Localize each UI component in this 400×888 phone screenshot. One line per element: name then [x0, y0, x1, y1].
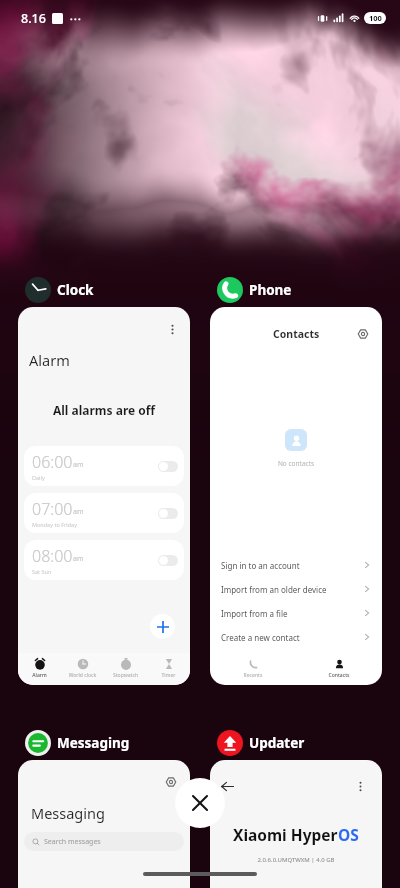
staticText: Stopwatch — [104, 672, 147, 679]
button[interactable]: More options — [18, 307, 190, 685]
staticText: am — [73, 554, 84, 564]
button[interactable]: Close all apps — [175, 778, 225, 828]
button[interactable]: Recents — [210, 655, 296, 685]
button[interactable]: Stopwatch — [104, 653, 147, 685]
button[interactable]: Messaging — [25, 726, 130, 760]
staticText: Search messages — [44, 837, 101, 847]
button[interactable]: Sign in to an account — [210, 553, 382, 577]
button[interactable]: More options — [163, 320, 181, 338]
button[interactable]: Timer — [147, 653, 190, 685]
staticText: World clock — [61, 672, 104, 679]
button[interactable]: Import from an older device — [210, 577, 382, 601]
staticText: am — [73, 460, 84, 470]
staticText: Recents — [210, 672, 296, 679]
staticText: Create a new contact — [221, 632, 300, 643]
button[interactable]: Search messages — [24, 832, 184, 851]
button[interactable]: Updater — [217, 726, 305, 760]
staticText: All alarms are off — [18, 402, 190, 418]
button[interactable]: Settings — [354, 325, 372, 343]
button[interactable]: Add alarm — [150, 614, 175, 639]
staticText: Import from an older device — [221, 584, 327, 595]
button[interactable]: 06:00 — [24, 446, 184, 486]
button[interactable]: More options — [351, 777, 369, 795]
staticText: Contacts — [296, 672, 382, 679]
button[interactable]: Toggle alarm — [158, 555, 178, 566]
staticText: Xiaomi Hyper — [233, 824, 338, 845]
button[interactable]: 07:00 — [24, 493, 184, 533]
staticText: Daily — [32, 474, 45, 481]
button[interactable]: Settings — [18, 760, 190, 888]
staticText: No contacts — [210, 459, 382, 468]
staticText: Monday to Friday — [32, 521, 77, 528]
staticText: Alarm — [29, 350, 70, 370]
staticText: Sat Sun — [32, 568, 52, 575]
button[interactable]: World clock — [61, 653, 104, 685]
button[interactable]: Alarm — [18, 653, 61, 685]
button[interactable]: Phone — [217, 273, 292, 307]
staticText: 8.16 — [21, 10, 46, 27]
staticText: 08:00 — [32, 545, 73, 567]
staticText: Messaging — [57, 734, 130, 752]
staticText: OS — [338, 824, 359, 845]
staticText: Messaging — [31, 803, 105, 823]
button[interactable]: Clock — [25, 273, 94, 307]
staticText: 100 — [369, 13, 382, 23]
staticText: 2.0.6.0.UMQTWXM | 4.0 GB — [210, 856, 382, 864]
button[interactable]: Contacts — [296, 655, 382, 685]
staticText: am — [73, 507, 84, 517]
button[interactable]: Contacts — [210, 307, 382, 685]
staticText: Alarm — [18, 672, 61, 679]
staticText: Phone — [249, 281, 292, 299]
button[interactable]: Toggle alarm — [158, 461, 178, 472]
staticText: Clock — [57, 281, 94, 299]
button[interactable]: Create a new contact — [210, 625, 382, 649]
staticText: Sign in to an account — [221, 560, 300, 571]
staticText: Contacts — [273, 327, 320, 341]
button[interactable]: Import from a file — [210, 601, 382, 625]
staticText: Timer — [147, 672, 190, 679]
button[interactable]: 08:00 — [24, 540, 184, 580]
staticText: Updater — [249, 734, 305, 752]
staticText: 07:00 — [32, 498, 73, 520]
staticText: 06:00 — [32, 451, 73, 473]
button[interactable]: Back — [218, 777, 236, 795]
button[interactable]: Back — [210, 760, 382, 888]
staticText: Import from a file — [221, 608, 288, 619]
button[interactable]: Settings — [162, 773, 180, 791]
button[interactable]: Toggle alarm — [158, 508, 178, 519]
